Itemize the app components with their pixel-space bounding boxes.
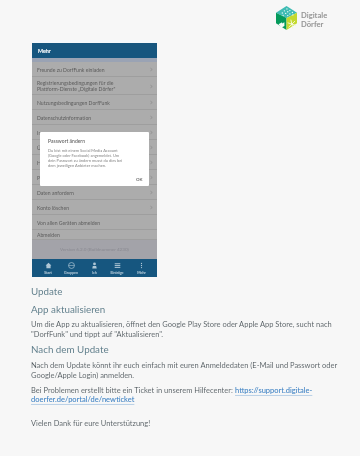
button[interactable]: Hilfe & Feedback bbox=[32, 155, 157, 170]
staticText: Über DorfFunk bbox=[37, 145, 71, 151]
button[interactable]: Von allen Geräten abmelden bbox=[32, 215, 157, 230]
staticText: Du bist mit einem Social Media Account (… bbox=[48, 148, 123, 168]
staticText: Nach dem Update könnt ihr euch einfach m… bbox=[31, 361, 338, 379]
staticText: Registrierungsbedingungen für die Plattf… bbox=[37, 80, 116, 92]
staticText: Von allen Geräten abmelden bbox=[37, 220, 101, 226]
button[interactable]: Über DorfFunk bbox=[32, 140, 157, 155]
button[interactable]: Registrierungsbedingungen für die Plattf… bbox=[32, 77, 157, 95]
button[interactable]: https://support.digitale- bbox=[235, 386, 313, 395]
staticText: Vielen Dank für eure Unterstützung! bbox=[31, 419, 151, 428]
button[interactable]: OK bbox=[136, 177, 143, 182]
staticText: Update bbox=[31, 285, 63, 297]
button[interactable]: Digitale Dörfer bbox=[274, 4, 336, 34]
staticText: Passwort ändern bbox=[48, 138, 86, 144]
staticText: Um die App zu aktualisieren, öffnet den … bbox=[31, 320, 332, 338]
button[interactable]: Start bbox=[43, 260, 53, 276]
button[interactable]: Gruppen bbox=[63, 260, 79, 276]
staticText: App aktualisieren bbox=[31, 303, 106, 315]
button[interactable]: Nutzungsbedingungen DorfFunk bbox=[32, 95, 157, 110]
button[interactable]: Passwort ändern bbox=[32, 170, 157, 185]
button[interactable]: Abmelden bbox=[32, 230, 157, 240]
staticText: Bei Problemen erstellt bitte ein Ticket … bbox=[31, 386, 235, 395]
staticText: Nach dem Update bbox=[31, 343, 109, 355]
button[interactable]: Mehr bbox=[32, 43, 157, 58]
button[interactable]: Einträge bbox=[109, 260, 125, 276]
button[interactable]: Konto löschen bbox=[32, 200, 157, 215]
button[interactable]: Mehr bbox=[136, 260, 147, 276]
button[interactable]: Daten anfordern bbox=[32, 185, 157, 200]
staticText: Digitale bbox=[301, 10, 328, 19]
staticText: Hilfe & Feedback bbox=[37, 160, 76, 166]
staticText: Freunde zu DorfFunk einladen bbox=[37, 67, 105, 73]
button[interactable]: Ich bbox=[90, 260, 99, 276]
staticText: Mehr bbox=[38, 48, 51, 54]
button[interactable]: Freunde zu DorfFunk einladen bbox=[32, 62, 157, 77]
staticText: Impressum bbox=[37, 130, 62, 136]
staticText: Konto löschen bbox=[37, 205, 69, 211]
button[interactable]: Datenschutzinformation bbox=[32, 110, 157, 125]
staticText: Abmelden bbox=[37, 232, 60, 238]
staticText: Einträge bbox=[110, 270, 124, 274]
staticText: Datenschutzinformation bbox=[37, 115, 92, 121]
staticText: Dörfer bbox=[301, 19, 324, 28]
staticText: Gruppen bbox=[64, 270, 78, 274]
staticText: Ich bbox=[92, 270, 97, 274]
staticText: Mehr bbox=[137, 270, 146, 274]
staticText: Version 6.2.0 (Buildnummer 4230) bbox=[60, 246, 129, 252]
staticText: Nutzungsbedingungen DorfFunk bbox=[37, 100, 110, 106]
staticText: Start bbox=[44, 270, 52, 274]
staticText: OK bbox=[136, 177, 143, 182]
button[interactable]: Impressum bbox=[32, 125, 157, 140]
staticText: Passwort ändern bbox=[37, 175, 75, 181]
staticText: Daten anfordern bbox=[37, 190, 74, 196]
button[interactable]: doerfer.de/portal/de/newticket bbox=[31, 395, 135, 404]
